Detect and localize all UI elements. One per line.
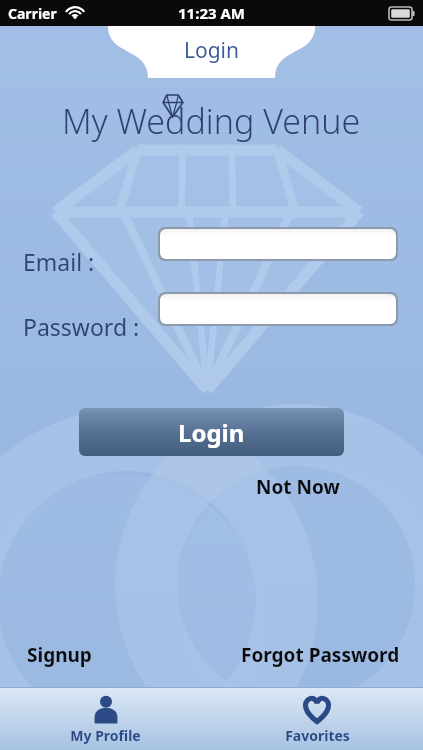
staticText: Favorites: [285, 726, 350, 745]
button[interactable]: Favorites: [211, 688, 423, 750]
button[interactable]: My Profile: [0, 688, 211, 750]
staticText: 11:23 AM: [178, 3, 245, 23]
button[interactable]: [160, 294, 396, 324]
button[interactable]: Login: [79, 408, 344, 456]
staticText: Signup: [27, 642, 92, 668]
staticText: My Profile: [70, 726, 141, 745]
staticText: Login: [178, 416, 245, 449]
staticText: Email :: [23, 246, 95, 277]
staticText: My Wedding Venue: [62, 98, 361, 144]
staticText: Carrier: [8, 4, 57, 23]
staticText: Login: [184, 36, 240, 65]
staticText: Password :: [23, 311, 140, 342]
button[interactable]: Not Now: [256, 474, 340, 500]
button[interactable]: Forgot Password: [241, 642, 400, 668]
button[interactable]: Signup: [27, 642, 92, 668]
staticText: Forgot Password: [241, 642, 400, 668]
button[interactable]: [160, 229, 396, 259]
staticText: Not Now: [256, 474, 340, 500]
